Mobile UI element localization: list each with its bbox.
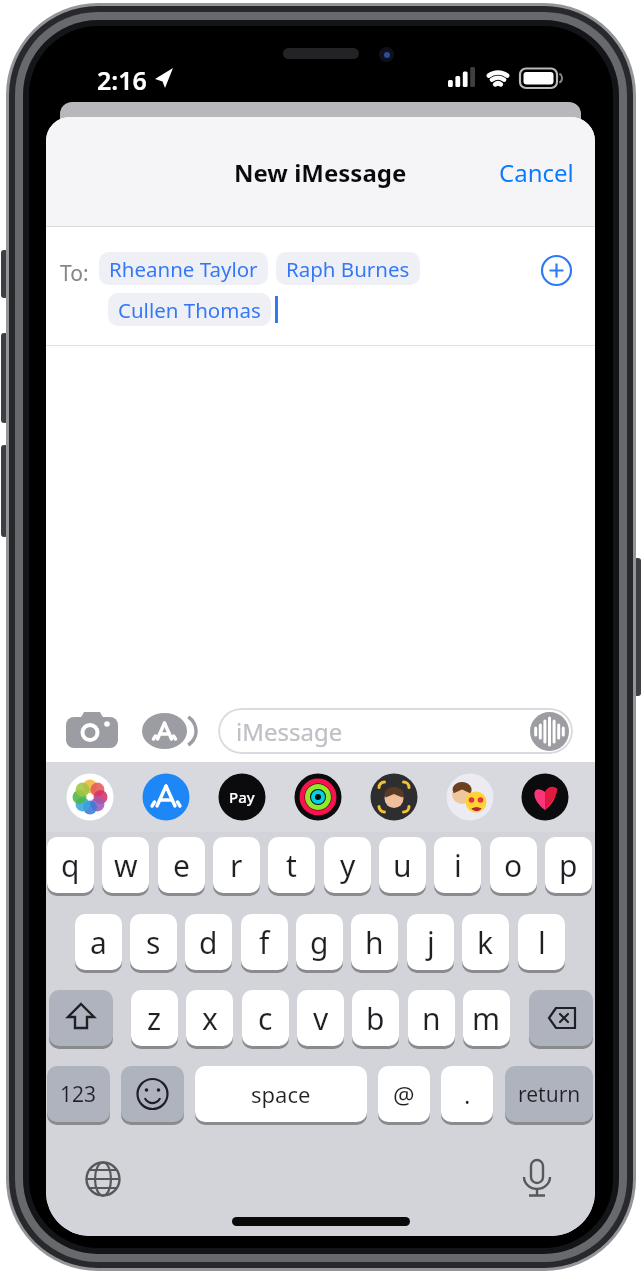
staticText: j [427, 922, 435, 963]
button[interactable]: z [131, 990, 178, 1046]
button[interactable]: return [505, 1066, 593, 1122]
staticText: n [422, 998, 441, 1039]
staticText: Raph Burnes [286, 255, 410, 283]
button[interactable] [447, 774, 494, 821]
button[interactable]: p [545, 837, 592, 893]
button[interactable]: h [351, 914, 398, 970]
staticText: m [472, 998, 501, 1039]
staticText: return [518, 1080, 581, 1109]
staticText: space [251, 1079, 311, 1109]
staticText: p [559, 845, 578, 886]
staticText: To: [60, 259, 89, 288]
button[interactable] [530, 712, 569, 751]
button[interactable]: k [462, 914, 509, 970]
button[interactable]: c [242, 990, 289, 1046]
staticText: e [173, 845, 190, 886]
staticText: l [538, 922, 546, 963]
button[interactable]: u [379, 837, 426, 893]
staticText: q [61, 845, 80, 886]
button[interactable] [49, 990, 113, 1046]
button[interactable] [371, 774, 418, 821]
staticText: x [202, 998, 218, 1039]
button[interactable]: r [213, 837, 260, 893]
button[interactable]: g [296, 914, 343, 970]
button[interactable] [529, 990, 593, 1046]
staticText: . [464, 1078, 471, 1111]
button[interactable]: v [297, 990, 344, 1046]
staticText: z [147, 998, 162, 1039]
staticText: iMessage [236, 715, 343, 748]
button[interactable]: n [408, 990, 455, 1046]
button[interactable]: i [434, 837, 481, 893]
button[interactable] [540, 254, 573, 287]
button[interactable] [81, 1157, 125, 1201]
button[interactable]: q [47, 837, 94, 893]
staticText: b [366, 998, 385, 1039]
staticText: i [454, 845, 462, 886]
staticText: s [146, 922, 161, 963]
button[interactable]: iMessage [218, 708, 573, 754]
button[interactable]: y [324, 837, 371, 893]
staticText: Rheanne Taylor [109, 255, 258, 283]
button[interactable]: m [463, 990, 510, 1046]
button[interactable] [219, 774, 266, 821]
staticText: y [340, 845, 356, 886]
staticText: 123 [60, 1080, 97, 1109]
button[interactable]: t [268, 837, 315, 893]
staticText: d [199, 922, 218, 963]
button[interactable]: l [518, 914, 565, 970]
button[interactable] [142, 713, 202, 751]
staticText: t [286, 845, 297, 886]
button[interactable]: x [186, 990, 233, 1046]
staticText: New iMessage [234, 156, 407, 189]
staticText: Pay [229, 787, 255, 807]
staticText: a [90, 922, 107, 963]
button[interactable] [515, 1157, 559, 1201]
button[interactable]: d [185, 914, 232, 970]
staticText: k [477, 922, 494, 963]
button[interactable]: j [407, 914, 454, 970]
button[interactable]: Raph Burnes [276, 252, 420, 285]
staticText: w [114, 845, 138, 886]
staticText: v [313, 998, 329, 1039]
button[interactable]: s [130, 914, 177, 970]
staticText: g [310, 922, 329, 963]
button[interactable] [522, 774, 569, 821]
button[interactable]: 123 [47, 1066, 110, 1122]
staticText: Cancel [499, 156, 574, 189]
button[interactable]: Rheanne Taylor [99, 252, 268, 285]
button[interactable]: w [102, 837, 149, 893]
staticText: h [365, 922, 384, 963]
button[interactable] [66, 710, 118, 752]
button[interactable]: a [75, 914, 122, 970]
staticText: @ [393, 1078, 415, 1111]
button[interactable]: space [195, 1066, 367, 1122]
staticText: r [230, 845, 243, 886]
staticText: o [504, 845, 523, 886]
button[interactable] [295, 774, 342, 821]
staticText: Cullen Thomas [118, 296, 261, 324]
button[interactable]: @ [378, 1066, 430, 1122]
button[interactable] [121, 1066, 184, 1122]
button[interactable] [67, 774, 114, 821]
button[interactable]: Cancel [499, 156, 574, 189]
staticText: c [258, 998, 273, 1039]
button[interactable] [143, 774, 190, 821]
button[interactable]: b [352, 990, 399, 1046]
staticText: u [393, 845, 412, 886]
button[interactable]: e [158, 837, 205, 893]
button[interactable]: f [241, 914, 288, 970]
button[interactable]: Cullen Thomas [108, 293, 271, 326]
staticText: f [259, 922, 270, 963]
staticText: 2:16 [97, 63, 147, 97]
button[interactable]: . [441, 1066, 493, 1122]
button[interactable]: o [490, 837, 537, 893]
